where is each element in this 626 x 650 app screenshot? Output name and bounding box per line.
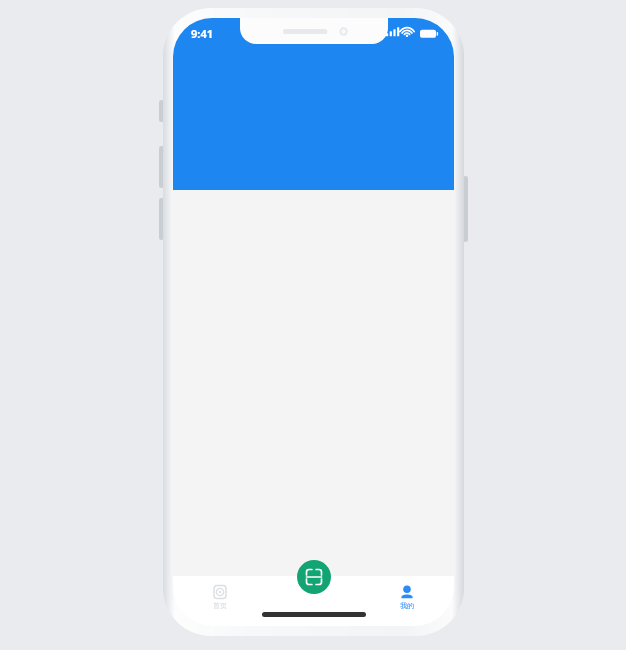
staticText: 首页 (213, 601, 227, 610)
button[interactable]: Scan (297, 560, 331, 594)
button[interactable]: 我的 (360, 576, 454, 618)
staticText: 9:41 (191, 26, 213, 41)
button[interactable]: 首页 (173, 576, 266, 618)
staticText: 我的 (400, 601, 414, 610)
